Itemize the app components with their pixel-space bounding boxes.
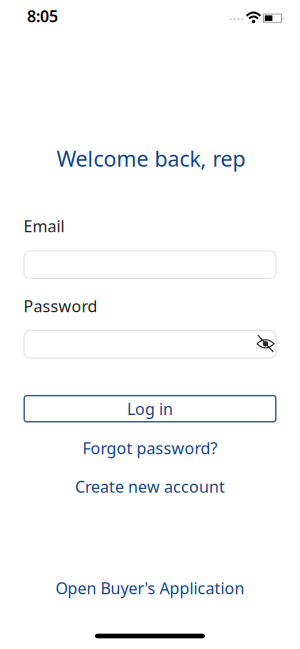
staticText: Welcome back, rep xyxy=(56,144,245,173)
staticText: Create new account xyxy=(75,476,225,497)
button[interactable] xyxy=(256,335,274,353)
button[interactable] xyxy=(23,330,276,358)
staticText: Forgot password? xyxy=(82,437,217,459)
staticText: Log in xyxy=(127,398,173,419)
button[interactable]: Log in xyxy=(23,395,276,422)
staticText: Password xyxy=(23,295,97,317)
button[interactable] xyxy=(23,250,276,279)
staticText: Open Buyer's Application xyxy=(55,577,244,599)
button[interactable]: Create new account xyxy=(75,476,225,497)
staticText: 8:05 xyxy=(27,5,58,27)
staticText: Email xyxy=(23,215,64,237)
button[interactable]: Open Buyer's Application xyxy=(55,577,244,599)
button[interactable]: Forgot password? xyxy=(82,437,217,459)
